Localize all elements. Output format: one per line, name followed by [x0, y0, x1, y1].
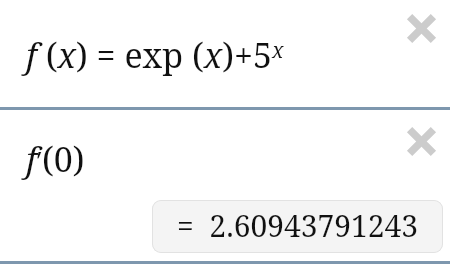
button[interactable]: f′(0): [0, 110, 450, 261]
button[interactable]: = 2.60943791243: [152, 200, 443, 253]
staticText: = 2.60943791243: [177, 205, 419, 246]
button[interactable]: f (x) = exp (x)+5x: [0, 0, 450, 107]
button[interactable]: Delete: [399, 6, 443, 50]
staticText: f (x) = exp (x)+5x: [26, 32, 284, 78]
button[interactable]: Delete: [399, 119, 443, 163]
staticText: f′(0): [26, 136, 85, 182]
